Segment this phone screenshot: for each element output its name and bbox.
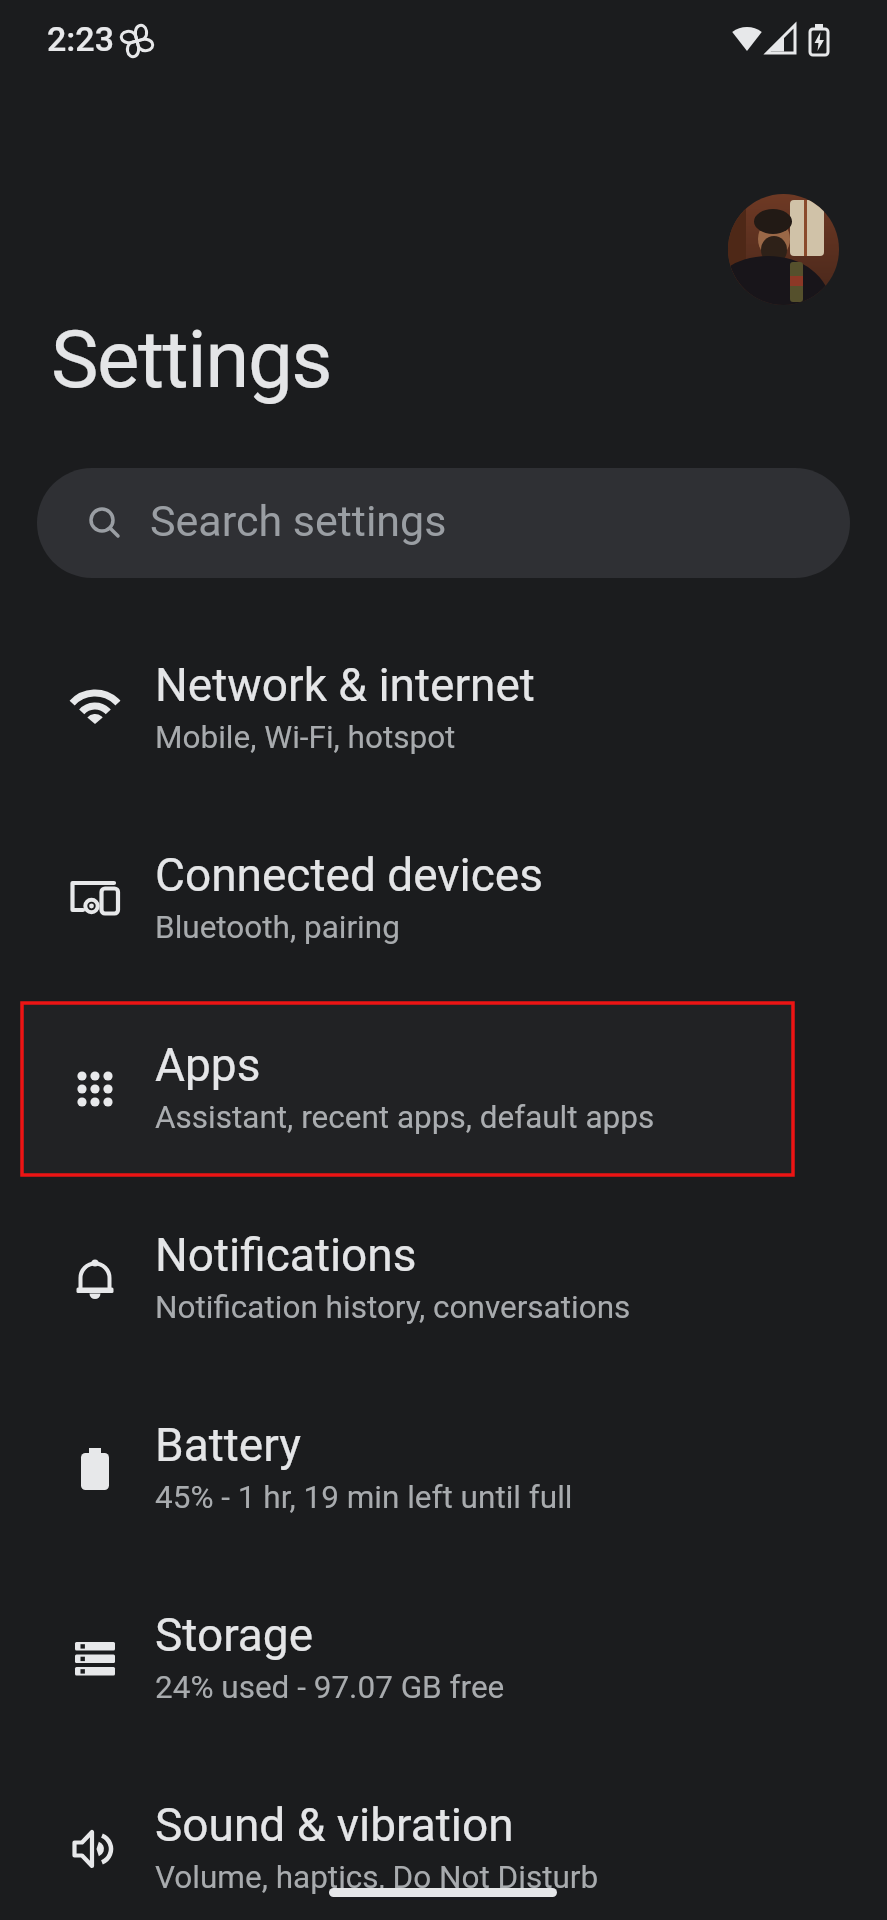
staticText: Notifications: [155, 1228, 417, 1282]
staticText: Volume, haptics, Do Not Disturb: [155, 1859, 599, 1896]
staticText: Connected devices: [155, 848, 543, 902]
staticText: 45% - 1 hr, 19 min left until full: [155, 1479, 573, 1516]
staticText: 24% used - 97.07 GB free: [155, 1669, 505, 1706]
staticText: Storage: [155, 1608, 314, 1662]
staticText: Bluetooth, pairing: [155, 909, 400, 946]
button[interactable]: Sound & vibration: [0, 1754, 887, 1920]
staticText: Sound & vibration: [155, 1798, 514, 1852]
staticText: Mobile, Wi-Fi, hotspot: [155, 719, 456, 756]
button[interactable]: Network & internet: [0, 614, 887, 804]
button[interactable]: Notifications: [0, 1184, 887, 1374]
staticText: Network & internet: [155, 658, 535, 712]
button[interactable]: Battery: [0, 1374, 887, 1564]
button[interactable]: Connected devices: [0, 804, 887, 994]
staticText: 2:23: [47, 19, 114, 59]
button[interactable]: Apps: [0, 994, 887, 1184]
staticText: Search settings: [150, 496, 447, 546]
button[interactable]: [728, 194, 839, 305]
button[interactable]: Search settings: [37, 468, 850, 578]
staticText: Notification history, conversations: [155, 1289, 631, 1326]
staticText: Battery: [155, 1418, 301, 1472]
staticText: Settings: [51, 313, 332, 407]
staticText: Assistant, recent apps, default apps: [155, 1099, 655, 1136]
button[interactable]: Storage: [0, 1564, 887, 1754]
staticText: Apps: [155, 1038, 261, 1092]
